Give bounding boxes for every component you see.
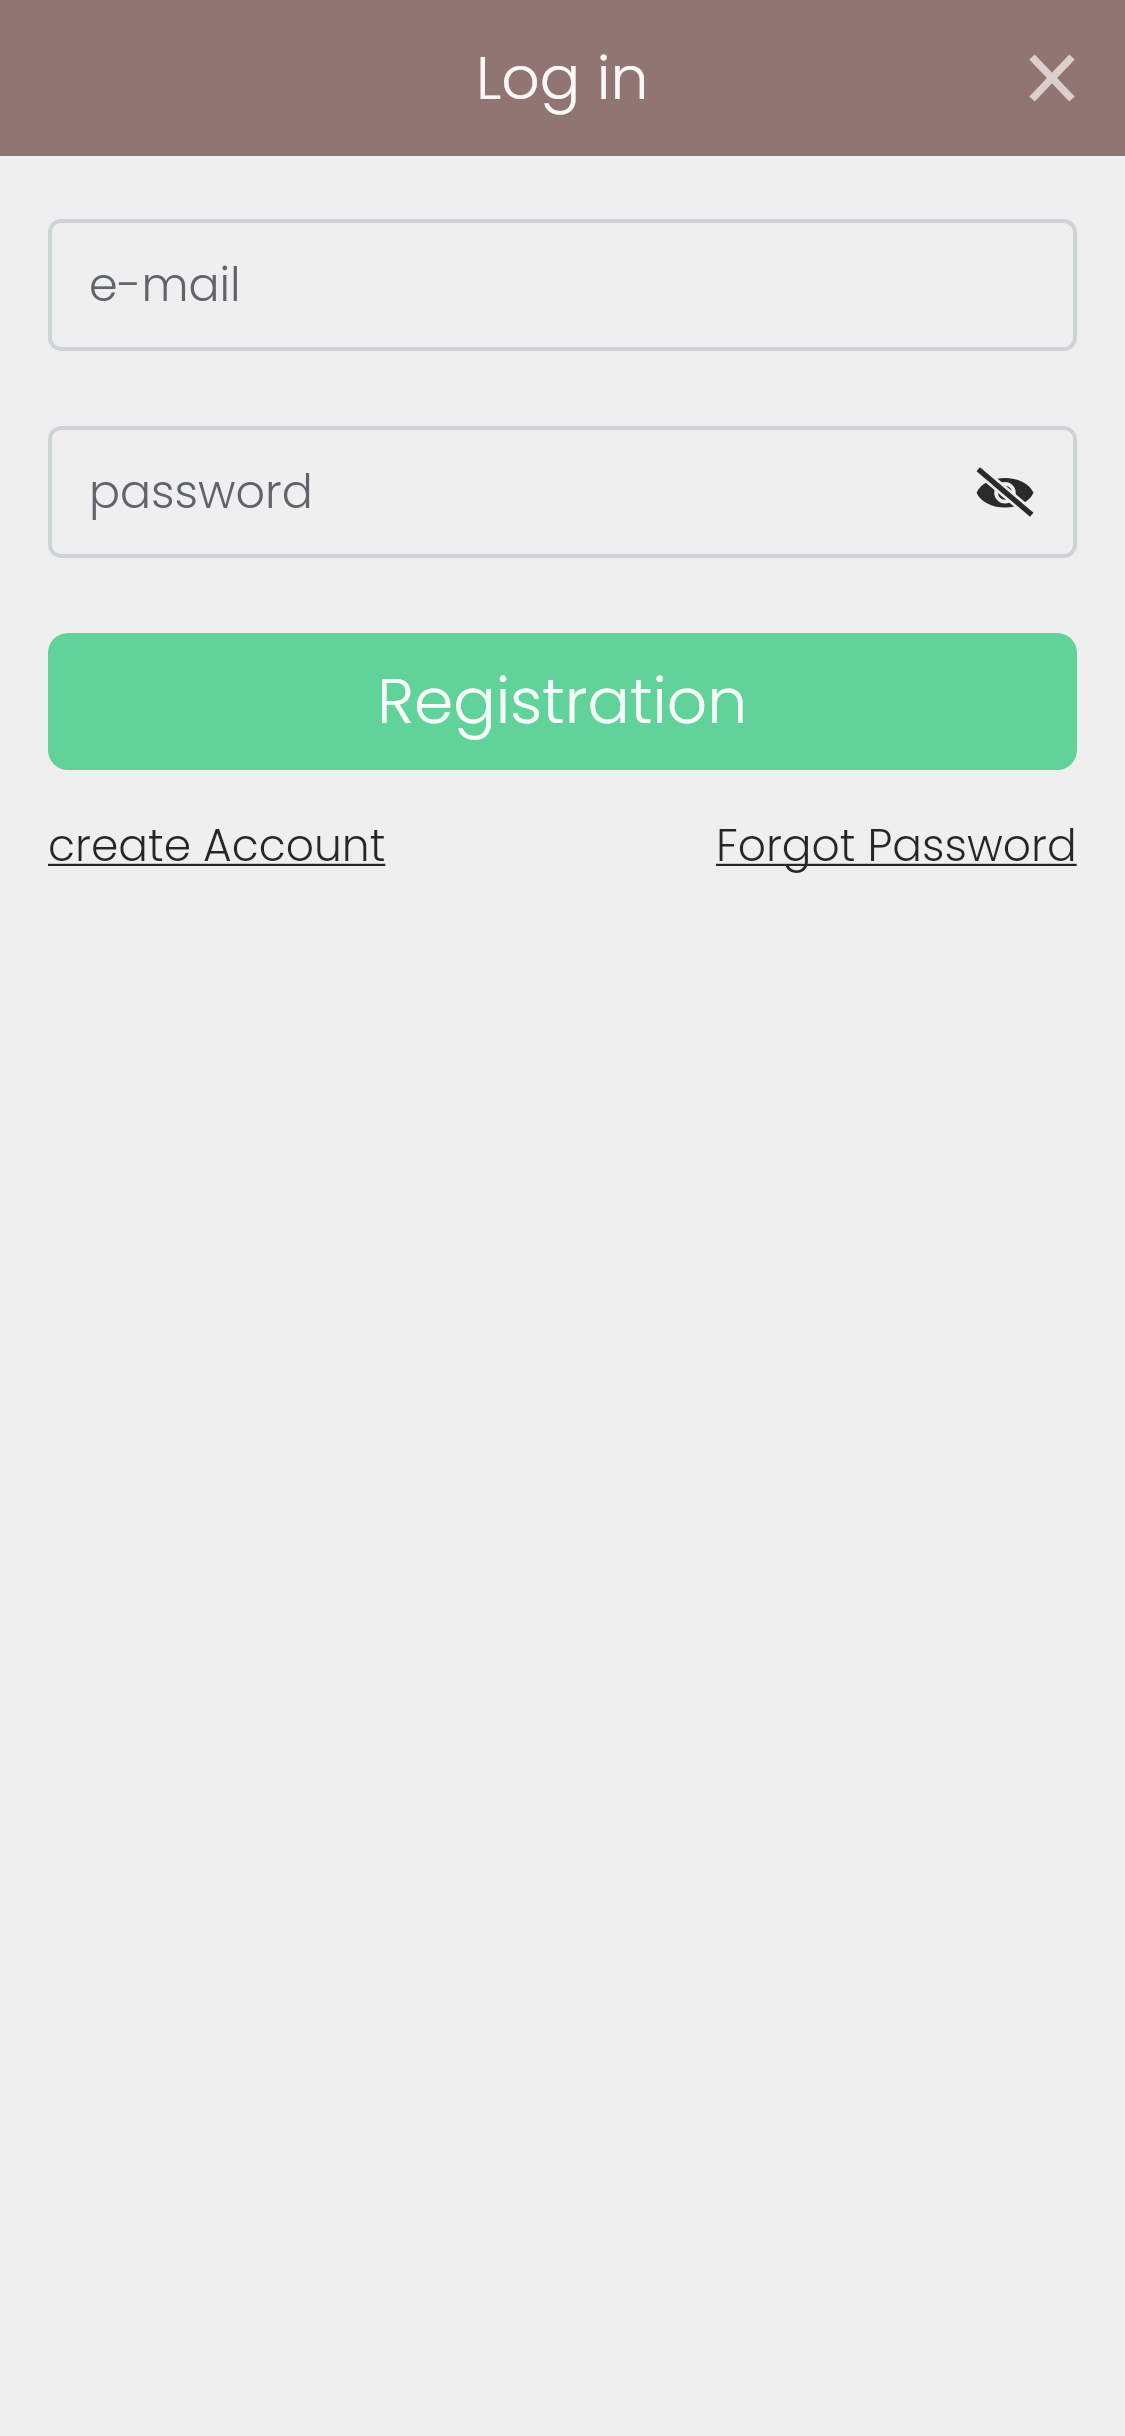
staticText: e-mail — [89, 253, 241, 317]
button[interactable]: password — [48, 426, 1077, 558]
button[interactable]: e-mail — [48, 219, 1077, 351]
staticText: Log in — [476, 36, 649, 120]
staticText: password — [89, 460, 313, 524]
button[interactable]: Registration — [48, 633, 1077, 770]
button[interactable]: Close — [997, 23, 1107, 133]
button[interactable]: Forgot Password — [716, 815, 1077, 877]
staticText: create Account — [48, 815, 386, 877]
staticText: Forgot Password — [716, 815, 1077, 877]
button[interactable]: create Account — [48, 815, 386, 877]
staticText: Registration — [377, 657, 748, 745]
button[interactable]: Show password — [957, 444, 1053, 540]
